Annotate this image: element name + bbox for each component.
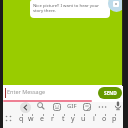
button[interactable]: [37, 102, 45, 110]
staticText: Enter Message: [7, 88, 46, 95]
staticText: o: [102, 114, 107, 124]
button[interactable]: w: [26, 112, 36, 126]
button[interactable]: [114, 101, 122, 111]
staticText: i: [93, 114, 95, 124]
button[interactable]: t: [58, 112, 68, 126]
button[interactable]: y: [68, 112, 78, 126]
button[interactable]: [83, 103, 91, 111]
button[interactable]: u: [78, 112, 88, 126]
button[interactable]: [20, 102, 31, 113]
button[interactable]: SEND: [98, 87, 122, 99]
staticText: r: [51, 114, 54, 124]
button[interactable]: o: [99, 112, 109, 126]
staticText: t: [62, 114, 65, 124]
staticText: SEND: [104, 90, 117, 97]
staticText: u: [81, 114, 86, 124]
staticText: y: [71, 114, 75, 124]
button[interactable]: r: [47, 112, 57, 126]
staticText: Nice picture!! I want to hear your story…: [33, 2, 100, 14]
staticText: p: [112, 114, 117, 124]
button[interactable]: [53, 103, 61, 111]
staticText: w: [28, 114, 34, 124]
button[interactable]: Nice picture!! I want to hear your story…: [30, 0, 110, 18]
button[interactable]: e: [37, 112, 47, 126]
button[interactable]: p: [109, 112, 119, 126]
button[interactable]: q: [16, 112, 26, 126]
staticText: GIF: [67, 102, 77, 110]
button[interactable]: i: [89, 112, 99, 126]
staticText: q: [19, 114, 24, 124]
button[interactable]: [98, 105, 107, 109]
staticText: e: [40, 114, 44, 124]
button[interactable]: [108, 0, 125, 12]
button[interactable]: GIF: [66, 102, 78, 110]
